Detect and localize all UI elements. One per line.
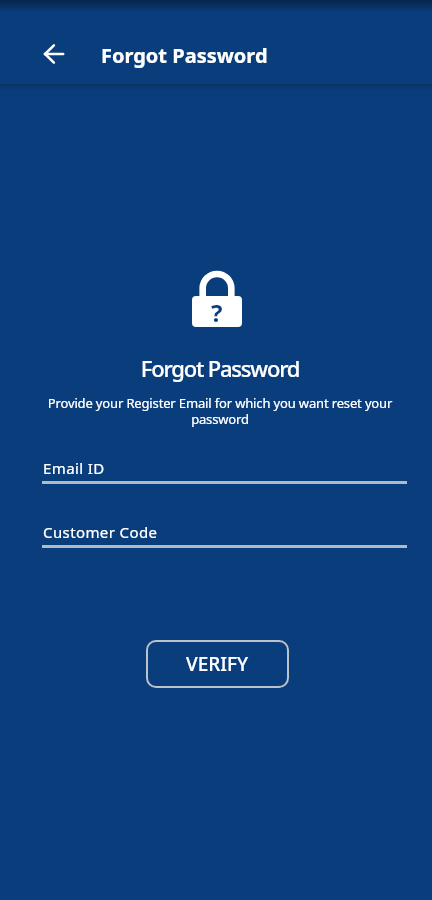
staticText: ?: [211, 296, 223, 327]
staticText: Email ID: [43, 458, 105, 478]
staticText: Provide your Register Email for which yo…: [4, 394, 432, 428]
staticText: VERIFY: [186, 651, 249, 677]
staticText: Forgot Password: [4, 353, 432, 383]
button[interactable]: VERIFY: [146, 640, 289, 688]
button[interactable]: [30, 30, 78, 78]
staticText: Forgot Password: [101, 42, 268, 69]
staticText: Customer Code: [43, 522, 158, 542]
